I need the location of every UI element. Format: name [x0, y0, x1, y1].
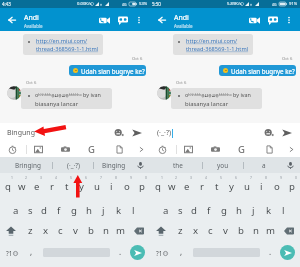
button[interactable]: z [22, 220, 38, 241]
button[interactable]: 1 [1, 173, 15, 194]
button[interactable]: m [113, 220, 128, 241]
button[interactable]: Google search [234, 142, 248, 156]
button[interactable]: More tools [285, 143, 297, 155]
button[interactable]: s [173, 200, 187, 220]
button[interactable]: More tools [135, 143, 147, 155]
button[interactable]: Video call [247, 13, 261, 27]
button[interactable]: Symbols [2, 242, 22, 263]
button[interactable]: 4 [194, 173, 209, 194]
button[interactable]: 3 [179, 173, 194, 194]
button[interactable]: Shift [150, 220, 172, 241]
button[interactable]: 7 [239, 173, 254, 194]
button[interactable]: Stickers [155, 142, 169, 156]
button[interactable]: d [37, 200, 51, 220]
button[interactable]: More options [283, 14, 295, 26]
button[interactable]: Back [154, 12, 170, 28]
button[interactable]: h [81, 200, 96, 220]
button[interactable]: http://en.miui.com/ [173, 34, 253, 55]
button[interactable]: x [38, 220, 53, 241]
button[interactable]: (·_·?) [53, 157, 93, 173]
button[interactable]: Emoji [262, 126, 275, 139]
button[interactable]: 6 [74, 173, 89, 194]
button[interactable]: 7 [89, 173, 104, 194]
button[interactable]: b [83, 220, 98, 241]
button[interactable]: More options [133, 14, 145, 26]
button[interactable]: Emoji [112, 126, 125, 139]
button[interactable]: j [96, 200, 111, 220]
button[interactable]: x [188, 220, 203, 241]
button[interactable]: 6 [224, 173, 239, 194]
button[interactable]: Bringing [4, 157, 52, 173]
button[interactable]: 3 [29, 173, 44, 194]
button[interactable]: 9 [119, 173, 134, 194]
button[interactable]: f [51, 200, 66, 220]
button[interactable]: g [216, 200, 231, 220]
button[interactable]: z [172, 220, 188, 241]
button[interactable]: Images [31, 142, 45, 156]
button[interactable]: k [111, 200, 126, 220]
button[interactable]: 1 [151, 173, 165, 194]
button[interactable]: the [154, 157, 202, 173]
button[interactable]: Backspace [128, 220, 150, 241]
button[interactable]: 9 [269, 173, 284, 194]
button[interactable]: Camera [58, 142, 72, 156]
button[interactable]: Voice input [133, 157, 147, 173]
button[interactable]: Messages [266, 13, 280, 27]
button[interactable]: Binging [94, 157, 133, 173]
button[interactable]: m [263, 220, 278, 241]
button[interactable]: , [26, 242, 36, 263]
button[interactable]: v [218, 220, 233, 241]
button[interactable]: 0 [134, 173, 149, 194]
button[interactable]: a [159, 200, 173, 220]
button[interactable]: oʰʰʰʰʰʰ๏ມ๏ມ๏ʰʰʰʰʰᵒ by ivan [21, 88, 112, 109]
button[interactable]: Stickers [5, 142, 19, 156]
button[interactable]: Shift [0, 220, 22, 241]
button[interactable]: Send [130, 245, 145, 260]
button[interactable]: , [176, 242, 186, 263]
button[interactable]: a [244, 157, 283, 173]
button[interactable]: v [68, 220, 83, 241]
button[interactable]: 8 [104, 173, 119, 194]
button[interactable]: 5 [209, 173, 224, 194]
button[interactable]: Messages [116, 13, 130, 27]
button[interactable]: d [187, 200, 201, 220]
button[interactable]: . [115, 242, 125, 263]
button[interactable]: Symbols [152, 242, 172, 263]
button[interactable]: 5 [59, 173, 74, 194]
button[interactable]: Images [181, 142, 195, 156]
button[interactable]: Udah sian bugnye ke? [219, 65, 296, 76]
button[interactable]: k [261, 200, 276, 220]
button[interactable]: Video call [97, 13, 111, 27]
button[interactable]: . [265, 242, 275, 263]
button[interactable]: 2 [15, 173, 29, 194]
button[interactable]: j [246, 200, 261, 220]
button[interactable]: Send message [280, 126, 293, 139]
button[interactable]: Google search [84, 142, 98, 156]
button[interactable]: f [201, 200, 216, 220]
button[interactable]: 0 [284, 173, 299, 194]
button[interactable]: 4 [44, 173, 59, 194]
button[interactable]: l [126, 200, 141, 220]
button[interactable]: a [9, 200, 23, 220]
button[interactable]: http://en.miui.com/ [23, 34, 103, 55]
button[interactable]: 8 [254, 173, 269, 194]
button[interactable]: n [248, 220, 263, 241]
button[interactable]: s [23, 200, 37, 220]
button[interactable]: Send message [130, 126, 143, 139]
button[interactable]: Documents [262, 142, 276, 156]
button[interactable]: oʰʰʰʰʰʰ๏ມ๏ມ๏ʰʰʰʰʰᵒ by ivan [171, 88, 262, 109]
button[interactable]: l [276, 200, 291, 220]
button[interactable]: c [203, 220, 218, 241]
button[interactable]: Camera [208, 142, 222, 156]
button[interactable]: h [231, 200, 246, 220]
button[interactable]: b [233, 220, 248, 241]
button[interactable]: g [66, 200, 81, 220]
button[interactable]: Back [4, 12, 20, 28]
button[interactable]: you [203, 157, 243, 173]
button[interactable]: Documents [112, 142, 126, 156]
button[interactable]: 2 [165, 173, 179, 194]
button[interactable]: Backspace [278, 220, 300, 241]
button[interactable]: Udah sian bugnye ke? [69, 65, 146, 76]
